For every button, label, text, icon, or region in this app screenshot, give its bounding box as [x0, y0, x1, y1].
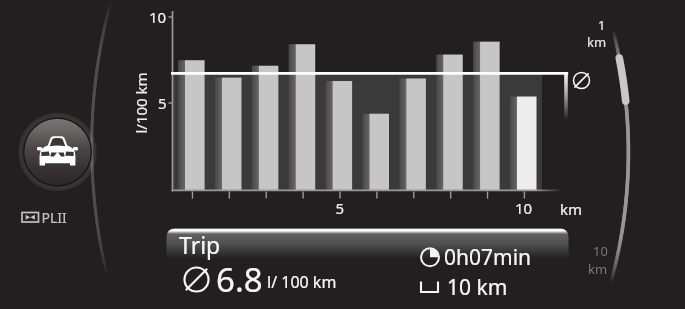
button[interactable]: Trip consumption history: [0, 0, 685, 309]
